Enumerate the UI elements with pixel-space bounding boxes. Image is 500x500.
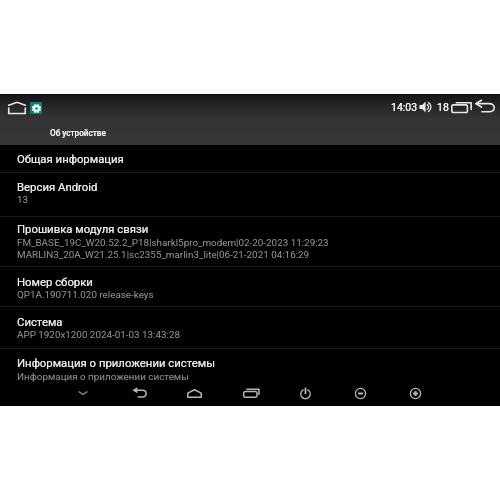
- staticText: Прошивка модуля связи: [17, 222, 149, 235]
- button[interactable]: Система: [0, 307, 500, 348]
- staticText: MARLIN3_20A_W21.25.1|sc2355_marlin3_lite…: [17, 249, 310, 261]
- staticText: Система: [17, 315, 63, 328]
- staticText: Версия Android: [17, 180, 98, 193]
- staticText: APP 1920x1200 2024-01-03 13:43:28: [17, 329, 180, 341]
- staticText: Об устройстве: [50, 128, 106, 138]
- button[interactable]: Прошивка модуля связи: [0, 217, 500, 266]
- staticText: Общая информация: [17, 152, 124, 165]
- button[interactable]: Home: [7, 101, 26, 114]
- button[interactable]: Settings: [30, 102, 42, 114]
- staticText: QP1A.190711.020 release-keys: [17, 289, 154, 301]
- staticText: 18: [437, 101, 449, 113]
- button[interactable]: Информация о приложении системы: [0, 349, 500, 383]
- staticText: FM_BASE_19C_W20.52.2_P18|sharkl5pro_mode…: [17, 237, 329, 249]
- button[interactable]: Power: [299, 387, 312, 399]
- button[interactable]: Recent apps: [243, 388, 260, 398]
- staticText: 14:03: [391, 101, 418, 113]
- button[interactable]: Back: [132, 388, 147, 398]
- staticText: Номер сборки: [17, 275, 93, 288]
- button[interactable]: Home: [187, 389, 202, 398]
- button[interactable]: Volume up: [409, 387, 422, 400]
- button[interactable]: Recent apps: [451, 101, 472, 114]
- staticText: Информация о приложении системы: [17, 356, 215, 369]
- button[interactable]: Общая информация: [0, 145, 500, 172]
- button[interactable]: Версия Android: [0, 173, 500, 215]
- staticText: Информация о приложении системы: [17, 371, 189, 383]
- staticText: 13: [17, 194, 29, 206]
- button[interactable]: Back: [474, 100, 496, 114]
- button[interactable]: Номер сборки: [0, 267, 500, 307]
- button[interactable]: Collapse: [76, 386, 90, 400]
- button[interactable]: Volume down: [354, 387, 367, 400]
